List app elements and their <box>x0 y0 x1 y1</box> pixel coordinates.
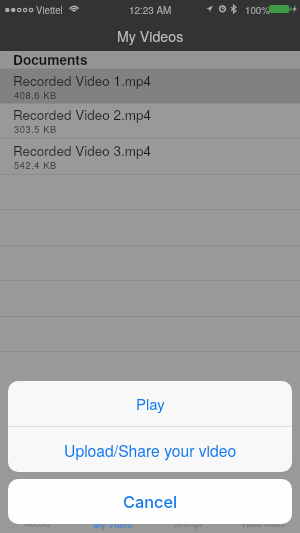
staticText: Recorded Video 2.mp4 <box>13 105 151 124</box>
staticText: My Video <box>93 518 133 531</box>
button[interactable] <box>0 69 300 104</box>
staticText: Record <box>24 518 51 530</box>
staticText: Recorded Video 3.mp4 <box>13 141 151 160</box>
button[interactable]: Upload/Share your video <box>8 427 292 472</box>
button[interactable]: Settings <box>150 507 225 533</box>
staticText: 100% <box>245 3 270 17</box>
button[interactable] <box>0 139 300 174</box>
button[interactable]: Video Notes <box>225 507 300 533</box>
staticText: Recorded Video 1.mp4 <box>13 71 151 90</box>
staticText: 303.5 KB <box>14 122 57 135</box>
button[interactable] <box>0 104 300 140</box>
staticText: My Videos <box>117 26 184 46</box>
staticText: Settings <box>173 518 203 530</box>
staticText: Viettel <box>36 3 63 17</box>
staticText: Video Notes <box>241 518 285 530</box>
button[interactable]: My Video <box>75 507 150 533</box>
staticText: 542.4 KB <box>14 158 57 171</box>
staticText: Cancel <box>123 492 178 512</box>
button[interactable]: Record <box>0 507 75 533</box>
button[interactable]: Cancel <box>8 479 292 524</box>
staticText: Upload/Share your video <box>64 439 237 461</box>
staticText: Play <box>136 393 165 414</box>
button[interactable]: Play <box>8 381 292 426</box>
staticText: Documents <box>13 50 88 68</box>
staticText: 12:23 AM <box>129 3 172 17</box>
staticText: 408.6 KB <box>14 88 57 101</box>
